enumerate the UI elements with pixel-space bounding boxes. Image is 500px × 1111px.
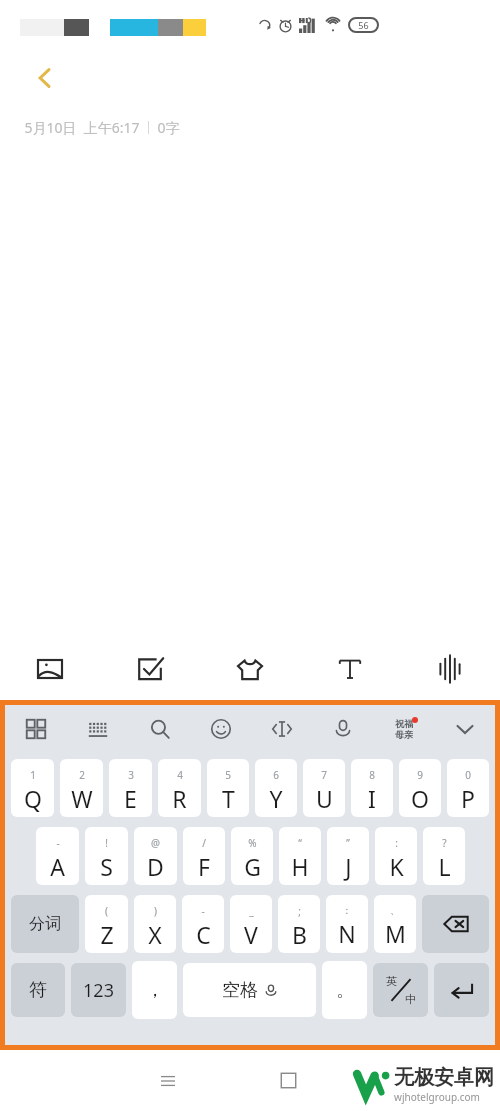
staticText: ? <box>442 836 447 850</box>
button[interactable]: Search <box>129 705 190 752</box>
button[interactable]: Theme <box>373 705 434 752</box>
button[interactable]: 2 <box>60 759 103 817</box>
button[interactable]: 5 <box>207 759 249 817</box>
staticText: 、 <box>390 904 400 917</box>
button[interactable]: - <box>182 895 224 953</box>
staticText: Z <box>100 919 114 950</box>
button[interactable]: Checklist <box>100 638 200 700</box>
staticText: X <box>148 919 162 950</box>
staticText: ， <box>146 979 164 1002</box>
button[interactable]: ) <box>134 895 176 953</box>
button[interactable]: ” <box>327 827 369 885</box>
button[interactable]: Style <box>200 638 300 700</box>
button[interactable]: % <box>231 827 273 885</box>
staticText: T <box>222 783 235 814</box>
button[interactable]: ( <box>85 895 128 953</box>
button[interactable]: Back <box>18 52 72 104</box>
staticText: G <box>244 851 261 882</box>
button[interactable]: Home <box>228 1050 348 1111</box>
staticText: O <box>411 783 429 814</box>
staticText: 中 <box>405 992 416 1006</box>
button[interactable]: 7 <box>303 759 345 817</box>
staticText: J <box>345 851 352 882</box>
button[interactable]: 符 <box>11 963 65 1017</box>
staticText: 123 <box>83 978 114 1003</box>
staticText: M <box>385 918 406 949</box>
button[interactable]: ， <box>132 961 177 1019</box>
button[interactable]: 8 <box>351 759 393 817</box>
staticText: N <box>338 918 356 949</box>
staticText: I <box>368 783 376 814</box>
staticText: E <box>124 783 137 814</box>
staticText: ” <box>346 836 350 850</box>
button[interactable]: 分词 <box>11 895 79 953</box>
button[interactable]: 。 <box>322 961 367 1019</box>
staticText: ) <box>154 904 157 918</box>
button[interactable]: 4 <box>158 759 201 817</box>
staticText: 符 <box>29 979 47 1002</box>
staticText: 6 <box>273 768 279 782</box>
button[interactable]: Enter <box>434 963 489 1017</box>
staticText: ( <box>105 904 108 918</box>
staticText: 5 <box>225 768 231 782</box>
button[interactable]: Backspace <box>422 895 489 953</box>
button[interactable]: Voice <box>400 638 500 700</box>
staticText: A <box>50 851 65 882</box>
staticText: 祝福 <box>395 718 413 729</box>
staticText: 。 <box>336 979 354 1002</box>
staticText: R <box>172 783 187 814</box>
button[interactable]: / <box>183 827 225 885</box>
staticText: / <box>202 836 206 850</box>
staticText: 9 <box>417 768 423 782</box>
button[interactable]: Voice input <box>312 705 373 752</box>
staticText: 4 <box>177 768 183 782</box>
staticText: F <box>198 851 210 882</box>
button[interactable]: Keyboard layout <box>67 705 129 752</box>
button[interactable]: 、 <box>374 895 416 953</box>
button[interactable]: 123 <box>71 963 126 1017</box>
button[interactable]: 9 <box>399 759 441 817</box>
staticText: C <box>196 919 211 950</box>
button[interactable]: “ <box>279 827 321 885</box>
button[interactable]: Apps <box>5 705 67 752</box>
button[interactable]: Insert image <box>0 638 100 700</box>
button[interactable]: _ <box>230 895 272 953</box>
button[interactable]: @ <box>134 827 177 885</box>
staticText: @ <box>151 836 160 850</box>
staticText: D <box>147 851 164 882</box>
staticText: P <box>461 783 475 814</box>
staticText: 1 <box>30 768 36 782</box>
button[interactable]: Collapse keyboard <box>434 705 495 752</box>
button[interactable]: 6 <box>255 759 297 817</box>
staticText: wjhotelgroup.com <box>394 1090 480 1104</box>
staticText: ! <box>105 836 108 850</box>
button[interactable]: ! <box>85 827 128 885</box>
button[interactable]: ? <box>423 827 465 885</box>
button[interactable]: 0 <box>447 759 489 817</box>
staticText: Q <box>24 783 42 814</box>
staticText: B <box>292 919 307 950</box>
button[interactable]: 空格 <box>183 963 316 1017</box>
staticText: - <box>56 836 60 850</box>
staticText: 0 <box>465 768 471 782</box>
button[interactable]: Recents <box>108 1050 228 1111</box>
button[interactable]: Cursor <box>251 705 312 752</box>
staticText: - <box>201 904 205 918</box>
button[interactable]: 1 <box>11 759 54 817</box>
button[interactable]: Emoji <box>190 705 251 752</box>
staticText: V <box>244 919 258 950</box>
button[interactable]: : <box>375 827 417 885</box>
button[interactable]: - <box>36 827 79 885</box>
button[interactable]: ： <box>326 895 368 953</box>
button[interactable]: ; <box>278 895 320 953</box>
staticText: _ <box>249 904 254 918</box>
button[interactable]: Switch English Chinese <box>373 963 428 1017</box>
staticText: 英 <box>386 974 397 988</box>
staticText: 7 <box>321 768 327 782</box>
button[interactable]: Text format <box>300 638 400 700</box>
staticText: H <box>291 851 309 882</box>
staticText: W <box>71 783 93 814</box>
staticText: Y <box>269 783 283 814</box>
button[interactable]: 3 <box>109 759 152 817</box>
staticText: 空格 <box>222 979 258 1002</box>
